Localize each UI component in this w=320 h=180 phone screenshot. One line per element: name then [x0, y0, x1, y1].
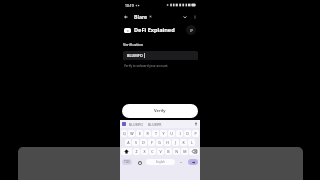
staticText: H	[166, 140, 169, 145]
button[interactable]: N	[173, 148, 180, 155]
button[interactable]: A	[125, 139, 131, 146]
button[interactable]: K	[180, 139, 187, 146]
button[interactable]: Space	[146, 159, 175, 165]
staticText: G	[158, 140, 161, 145]
staticText: O	[186, 131, 189, 136]
staticText: BLUMFO	[129, 122, 143, 127]
button[interactable]: D	[140, 139, 147, 146]
staticText: F	[151, 140, 153, 145]
staticText: A	[127, 140, 130, 145]
staticText: DeFi Explained	[134, 26, 175, 34]
staticText: Q	[123, 131, 126, 136]
button[interactable]: S	[132, 139, 139, 146]
button[interactable]: Clipboard	[122, 122, 126, 126]
button[interactable]: X	[141, 148, 148, 155]
staticText: U	[170, 131, 173, 136]
button[interactable]: E	[136, 130, 143, 137]
staticText: S	[135, 140, 137, 145]
button[interactable]: BLUMFO	[123, 51, 198, 60]
staticText: ?123	[124, 160, 130, 164]
staticText: BLUMFR	[148, 122, 162, 127]
button[interactable]: U	[168, 130, 175, 137]
button[interactable]: Q	[121, 130, 127, 137]
button[interactable]: T	[152, 130, 159, 137]
button[interactable]: Playlist options	[186, 25, 196, 35]
button[interactable]: Y	[160, 130, 167, 137]
staticText: 10:19	[125, 3, 134, 8]
staticText: B	[167, 149, 170, 154]
staticText: BLUMFO	[127, 53, 143, 58]
button[interactable]: Emoji	[137, 160, 142, 165]
button[interactable]: O	[184, 130, 191, 137]
staticText: Verify	[154, 108, 166, 114]
button[interactable]: Shift	[121, 148, 132, 155]
staticText: I	[179, 131, 181, 136]
staticText: T	[155, 131, 157, 136]
button[interactable]: G	[156, 139, 163, 146]
button[interactable]: H	[164, 139, 171, 146]
button[interactable]: F	[148, 139, 155, 146]
staticText: C	[151, 149, 154, 154]
button[interactable]: J	[172, 139, 179, 146]
button[interactable]: P	[192, 130, 199, 137]
staticText: N	[175, 149, 178, 154]
staticText: J	[175, 140, 176, 145]
staticText: English	[156, 160, 165, 164]
staticText: W	[130, 131, 134, 136]
staticText: D	[142, 140, 145, 145]
staticText: X	[143, 149, 146, 154]
staticText: Verification	[123, 42, 144, 47]
staticText: K	[182, 140, 185, 145]
staticText: R	[146, 131, 149, 136]
button[interactable]: Expand	[181, 13, 189, 21]
staticText: Z	[135, 149, 138, 154]
button[interactable]: Voice input	[194, 122, 198, 126]
staticText: V	[159, 149, 162, 154]
staticText: M	[183, 149, 187, 154]
button[interactable]: L	[188, 139, 195, 146]
staticText: P	[194, 131, 197, 136]
button[interactable]: B	[165, 148, 172, 155]
button[interactable]: Back	[122, 13, 130, 21]
button[interactable]: M	[181, 148, 188, 155]
button[interactable]: Period	[179, 160, 183, 164]
button[interactable]: Z	[133, 148, 140, 155]
button[interactable]: R	[144, 130, 151, 137]
button[interactable]: More options	[191, 13, 198, 20]
button[interactable]: ?123	[122, 159, 132, 165]
staticText: E	[139, 131, 141, 136]
button[interactable]: Backspace	[189, 148, 199, 155]
button[interactable]: C	[149, 148, 156, 155]
button[interactable]: Enter	[188, 159, 198, 165]
button[interactable]: W	[128, 130, 135, 137]
staticText: Y	[162, 131, 165, 136]
staticText: L	[191, 140, 193, 145]
button[interactable]: V	[157, 148, 164, 155]
button[interactable]: Verify	[122, 104, 198, 118]
staticText: Blare	[134, 13, 148, 20]
button[interactable]: I	[176, 130, 183, 137]
staticText: Verify to onboard your account	[124, 64, 168, 68]
